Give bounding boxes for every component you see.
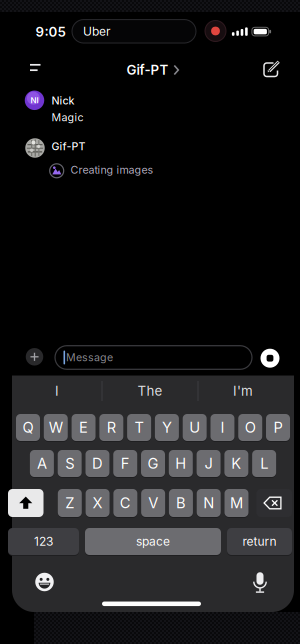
button[interactable]: I bbox=[210, 414, 234, 441]
staticText: 9:05 bbox=[35, 24, 65, 40]
button[interactable]: Message bbox=[55, 346, 252, 369]
button[interactable]: F bbox=[113, 450, 137, 477]
button[interactable]: return bbox=[227, 528, 292, 555]
button[interactable]: Gif-PT bbox=[126, 62, 179, 78]
button[interactable]: N bbox=[197, 489, 221, 517]
staticText: S bbox=[65, 455, 74, 472]
staticText: The bbox=[137, 383, 162, 399]
staticText: W bbox=[49, 419, 63, 436]
button[interactable]: D bbox=[85, 450, 109, 477]
button[interactable]: I'm bbox=[197, 379, 289, 403]
staticText: U bbox=[189, 419, 200, 436]
button[interactable]: B bbox=[169, 489, 193, 517]
staticText: K bbox=[231, 455, 241, 472]
button[interactable]: Q bbox=[16, 414, 40, 441]
staticText: J bbox=[205, 455, 213, 472]
button[interactable]: W bbox=[44, 414, 68, 441]
button[interactable]: Delete bbox=[256, 489, 292, 517]
staticText: F bbox=[121, 455, 130, 472]
staticText: B bbox=[176, 494, 186, 512]
staticText: I bbox=[55, 383, 59, 399]
button[interactable]: I bbox=[13, 379, 101, 403]
staticText: Nick bbox=[51, 94, 74, 107]
button[interactable]: Attach bbox=[26, 348, 43, 366]
button[interactable]: K bbox=[224, 450, 248, 477]
staticText: H bbox=[175, 455, 186, 472]
staticText: Magic bbox=[51, 111, 83, 124]
staticText: A bbox=[37, 455, 47, 472]
button[interactable]: X bbox=[86, 489, 110, 517]
button[interactable]: O bbox=[238, 414, 262, 441]
button[interactable]: Dictate bbox=[251, 571, 268, 593]
button[interactable]: M bbox=[224, 489, 248, 517]
staticText: Creating images bbox=[70, 163, 153, 176]
button[interactable]: P bbox=[266, 414, 290, 441]
staticText: X bbox=[93, 494, 103, 512]
staticText: M bbox=[230, 494, 243, 512]
staticText: return bbox=[242, 534, 276, 549]
button[interactable]: New chat bbox=[262, 61, 279, 77]
button[interactable]: Y bbox=[155, 414, 179, 441]
staticText: 123 bbox=[34, 534, 53, 549]
staticText: D bbox=[92, 455, 103, 472]
staticText: C bbox=[120, 494, 131, 512]
staticText: space bbox=[136, 534, 170, 549]
button[interactable]: A bbox=[30, 450, 54, 477]
staticText: I bbox=[220, 419, 224, 436]
staticText: I'm bbox=[233, 383, 253, 399]
staticText: Z bbox=[65, 494, 74, 512]
staticText: T bbox=[135, 419, 144, 436]
staticText: L bbox=[260, 455, 268, 472]
staticText: Q bbox=[22, 419, 33, 436]
button[interactable]: R bbox=[99, 414, 123, 441]
button[interactable]: Emoji bbox=[35, 573, 54, 591]
button[interactable]: space bbox=[85, 528, 221, 555]
button[interactable]: Z bbox=[58, 489, 82, 517]
staticText: Y bbox=[162, 419, 172, 436]
button[interactable]: H bbox=[169, 450, 193, 477]
button[interactable]: J bbox=[197, 450, 221, 477]
staticText: Uber bbox=[83, 24, 111, 38]
button[interactable]: Uber bbox=[72, 20, 196, 43]
staticText: O bbox=[245, 419, 256, 436]
button[interactable]: T bbox=[127, 414, 151, 441]
staticText: E bbox=[79, 419, 88, 436]
button[interactable]: V bbox=[141, 489, 165, 517]
button[interactable]: E bbox=[72, 414, 96, 441]
button[interactable]: Menu bbox=[26, 59, 44, 75]
button[interactable]: Stop bbox=[260, 349, 279, 368]
button[interactable]: S bbox=[58, 450, 82, 477]
button[interactable]: L bbox=[252, 450, 276, 477]
button[interactable]: C bbox=[113, 489, 137, 517]
staticText: P bbox=[273, 419, 282, 436]
staticText: N bbox=[203, 494, 214, 512]
button[interactable]: G bbox=[141, 450, 165, 477]
staticText: Message bbox=[66, 351, 113, 364]
staticText: G bbox=[147, 455, 158, 472]
staticText: Gif-PT bbox=[126, 62, 168, 78]
staticText: R bbox=[107, 419, 116, 436]
button[interactable]: U bbox=[183, 414, 207, 441]
staticText: NI bbox=[30, 96, 38, 105]
button[interactable]: 123 bbox=[8, 528, 79, 555]
staticText: Gif-PT bbox=[51, 140, 85, 153]
button[interactable]: Shift bbox=[8, 489, 43, 517]
button[interactable]: The bbox=[104, 379, 196, 403]
staticText: V bbox=[148, 494, 158, 512]
